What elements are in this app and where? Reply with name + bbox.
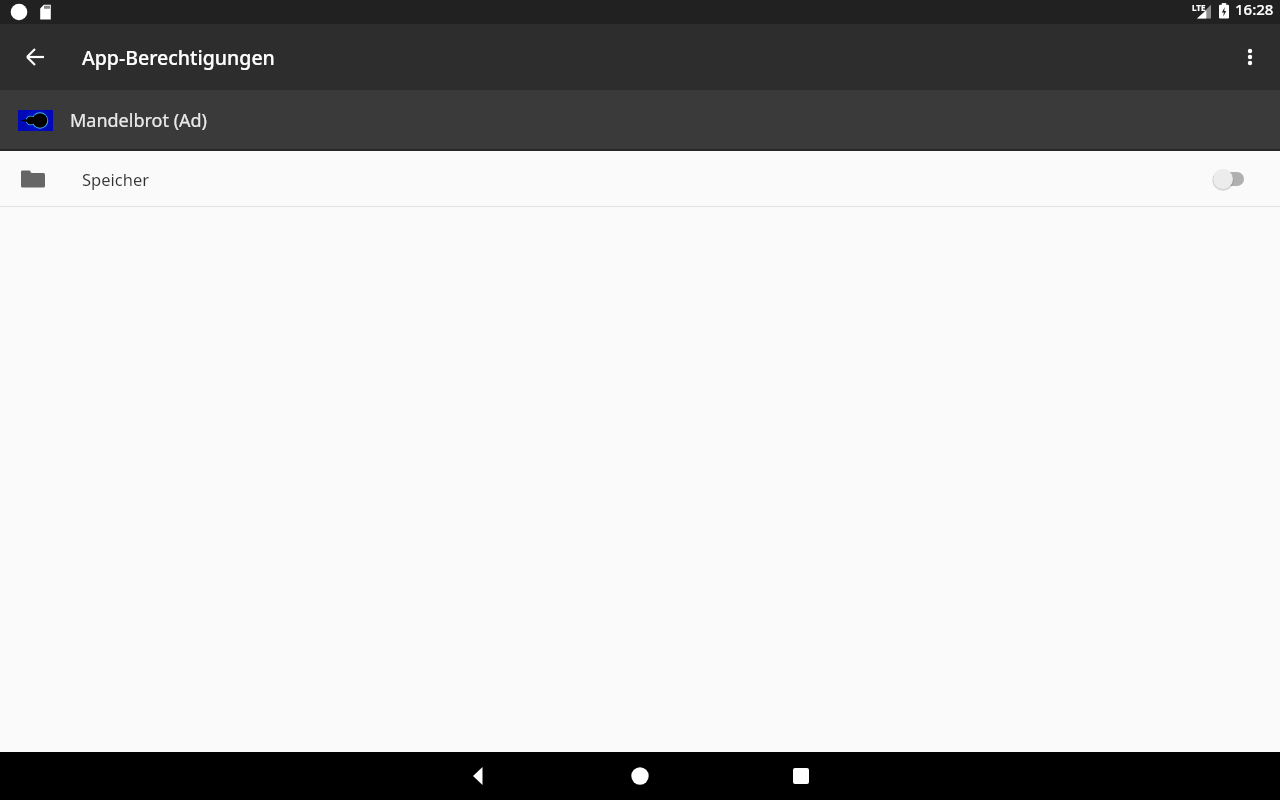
button[interactable] — [454, 752, 502, 800]
staticText: Mandelbrot (Ad) — [70, 108, 207, 133]
button[interactable] — [7, 29, 63, 85]
staticText: 16:28 — [1235, 0, 1274, 19]
button[interactable] — [777, 752, 825, 800]
button[interactable] — [1226, 33, 1274, 81]
button[interactable] — [616, 752, 664, 800]
staticText: Speicher — [82, 168, 150, 190]
button[interactable]: Speicher — [0, 151, 1280, 206]
button[interactable] — [1198, 159, 1254, 199]
staticText: App-Berechtigungen — [82, 44, 275, 71]
staticText: LTE — [1192, 2, 1206, 13]
